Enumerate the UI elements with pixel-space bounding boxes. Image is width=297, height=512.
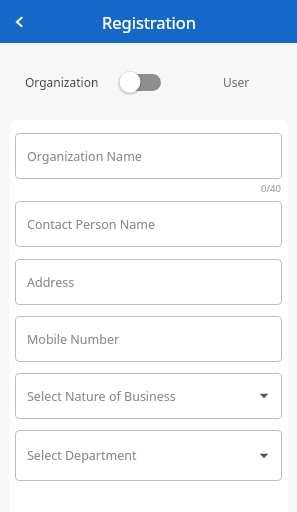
staticText: Organization [25,74,99,90]
staticText: Organization Name [27,148,142,165]
button[interactable]: Select Department [15,430,282,481]
button[interactable]: Organization Name [15,133,282,179]
staticText: Mobile Number [27,331,120,348]
staticText: Address [27,274,75,291]
staticText: Registration [102,11,196,33]
button[interactable]: Back [7,9,33,35]
staticText: Select Nature of Business [27,388,176,405]
button[interactable]: Mobile Number [15,316,282,362]
staticText: User [223,74,250,90]
staticText: Select Department [27,447,137,464]
button[interactable]: Contact Person Name [15,201,282,247]
button[interactable]: Address [15,259,282,305]
staticText: Contact Person Name [27,216,156,233]
button[interactable]: Toggle Organization or User [117,69,161,95]
button[interactable]: Select Nature of Business [15,373,282,419]
staticText: 0/40 [261,182,281,195]
